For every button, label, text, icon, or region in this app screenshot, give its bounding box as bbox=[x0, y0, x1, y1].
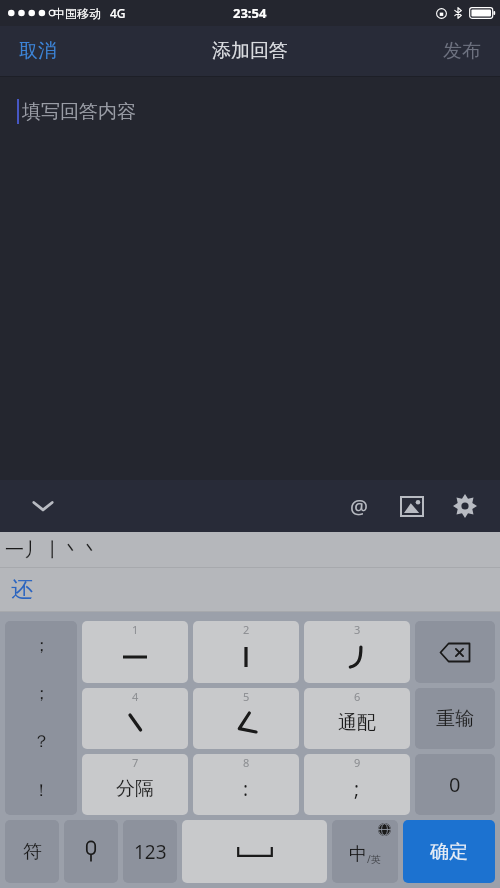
button[interactable]: Voice input bbox=[64, 820, 118, 883]
staticText: ; bbox=[354, 776, 360, 802]
staticText: 7 bbox=[132, 755, 139, 770]
button[interactable]: 确定 bbox=[403, 820, 495, 883]
button[interactable]: Hide keyboard bbox=[22, 485, 64, 527]
staticText: ！ bbox=[33, 780, 50, 801]
button[interactable]: 取消 bbox=[0, 28, 76, 74]
staticText: 23:54 bbox=[233, 4, 267, 22]
staticText: ？ bbox=[33, 731, 50, 752]
staticText: 中 bbox=[349, 843, 367, 866]
button[interactable]: 符 bbox=[5, 820, 59, 883]
staticText: 确定 bbox=[430, 840, 468, 864]
staticText: 6 bbox=[354, 689, 361, 704]
staticText: 0 bbox=[449, 771, 461, 798]
button[interactable]: Switch Chinese English bbox=[332, 820, 398, 883]
staticText: 中国移动 bbox=[53, 6, 101, 21]
staticText: 符 bbox=[23, 840, 42, 864]
staticText: 添加回答 bbox=[212, 39, 288, 63]
staticText: 发布 bbox=[443, 39, 481, 63]
staticText: 重输 bbox=[436, 707, 474, 731]
button[interactable]: 9 bbox=[304, 754, 410, 815]
button[interactable]: 8 bbox=[193, 754, 299, 815]
button[interactable]: 发布 bbox=[424, 28, 500, 74]
button[interactable]: 重输 bbox=[415, 688, 495, 749]
staticText: 123 bbox=[134, 839, 167, 865]
button[interactable]: ？ bbox=[5, 717, 77, 766]
staticText: 填写回答内容 bbox=[22, 100, 136, 124]
button[interactable]: Backspace bbox=[415, 621, 495, 683]
staticText: ； bbox=[33, 635, 50, 656]
staticText: 4 bbox=[132, 689, 139, 704]
staticText: 一丿丨丶丶 bbox=[5, 538, 100, 562]
button[interactable]: ； bbox=[5, 669, 77, 717]
staticText: 9 bbox=[354, 755, 361, 770]
staticText: 2 bbox=[243, 622, 250, 637]
staticText: /英 bbox=[367, 852, 381, 866]
button[interactable]: Space bbox=[182, 820, 327, 883]
staticText: 1 bbox=[132, 622, 139, 637]
staticText: @ bbox=[350, 493, 368, 520]
button[interactable]: 5 bbox=[193, 688, 299, 749]
button[interactable]: Mention user bbox=[338, 485, 380, 527]
staticText: 取消 bbox=[19, 39, 57, 63]
staticText: : bbox=[243, 776, 249, 802]
button[interactable]: 7 bbox=[82, 754, 188, 815]
staticText: 还 bbox=[11, 576, 33, 604]
staticText: 5 bbox=[243, 689, 250, 704]
staticText: 分隔 bbox=[116, 777, 154, 801]
staticText: 8 bbox=[243, 755, 250, 770]
button[interactable]: 0 bbox=[415, 754, 495, 815]
button[interactable]: 6 bbox=[304, 688, 410, 749]
staticText: 通配 bbox=[338, 711, 376, 735]
button[interactable]: ； bbox=[5, 621, 77, 669]
staticText: ； bbox=[33, 683, 50, 704]
button[interactable]: 2 bbox=[193, 621, 299, 683]
button[interactable]: Settings bbox=[444, 485, 486, 527]
staticText: 4G bbox=[110, 5, 126, 21]
button[interactable]: 还 bbox=[0, 570, 44, 610]
button[interactable]: ！ bbox=[5, 766, 77, 815]
button[interactable]: 1 bbox=[82, 621, 188, 683]
button[interactable]: 123 bbox=[123, 820, 177, 883]
staticText: 3 bbox=[354, 622, 361, 637]
button[interactable]: Insert image bbox=[391, 485, 433, 527]
button[interactable]: 3 bbox=[304, 621, 410, 683]
button[interactable]: 4 bbox=[82, 688, 188, 749]
